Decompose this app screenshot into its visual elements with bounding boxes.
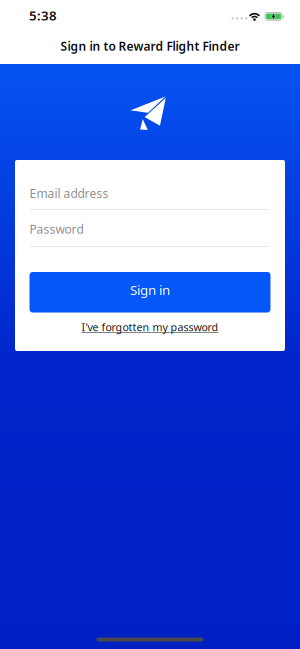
button[interactable]: Sign in bbox=[29, 272, 270, 312]
button[interactable]: Password bbox=[30, 210, 270, 247]
staticText: I've forgotten my password bbox=[81, 320, 218, 334]
button[interactable]: Email address bbox=[30, 170, 270, 210]
staticText: Password bbox=[29, 221, 83, 237]
staticText: 5:38 bbox=[29, 6, 57, 24]
staticText: Sign in to Reward Flight Finder bbox=[60, 38, 239, 54]
button[interactable]: I've forgotten my password bbox=[15, 320, 285, 334]
staticText: Sign in bbox=[130, 281, 170, 299]
staticText: Email address bbox=[29, 185, 108, 201]
